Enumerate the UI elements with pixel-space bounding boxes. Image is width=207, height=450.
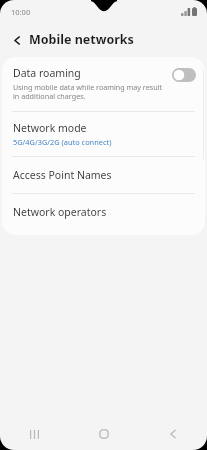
button[interactable]: Network operators: [2, 194, 205, 230]
staticText: Using mobile data while roaming may resu…: [13, 82, 168, 102]
staticText: Data roaming: [13, 66, 81, 80]
button[interactable]: Network mode: [2, 112, 205, 156]
staticText: 10:00: [11, 7, 31, 17]
staticText: Mobile networks: [29, 31, 134, 48]
button[interactable]: Home: [69, 418, 138, 450]
button[interactable]: Data roaming: [2, 57, 205, 111]
staticText: Access Point Names: [13, 168, 112, 182]
button[interactable]: Access Point Names: [2, 157, 205, 193]
staticText: 5G/4G/3G/2G (auto connect): [13, 137, 112, 147]
button[interactable]: Data roaming toggle, off: [172, 68, 196, 82]
button[interactable]: Back: [138, 418, 207, 450]
button[interactable]: Back: [8, 31, 26, 49]
staticText: Network operators: [13, 205, 107, 219]
staticText: Network mode: [13, 121, 87, 135]
button[interactable]: Recent apps: [0, 418, 69, 450]
